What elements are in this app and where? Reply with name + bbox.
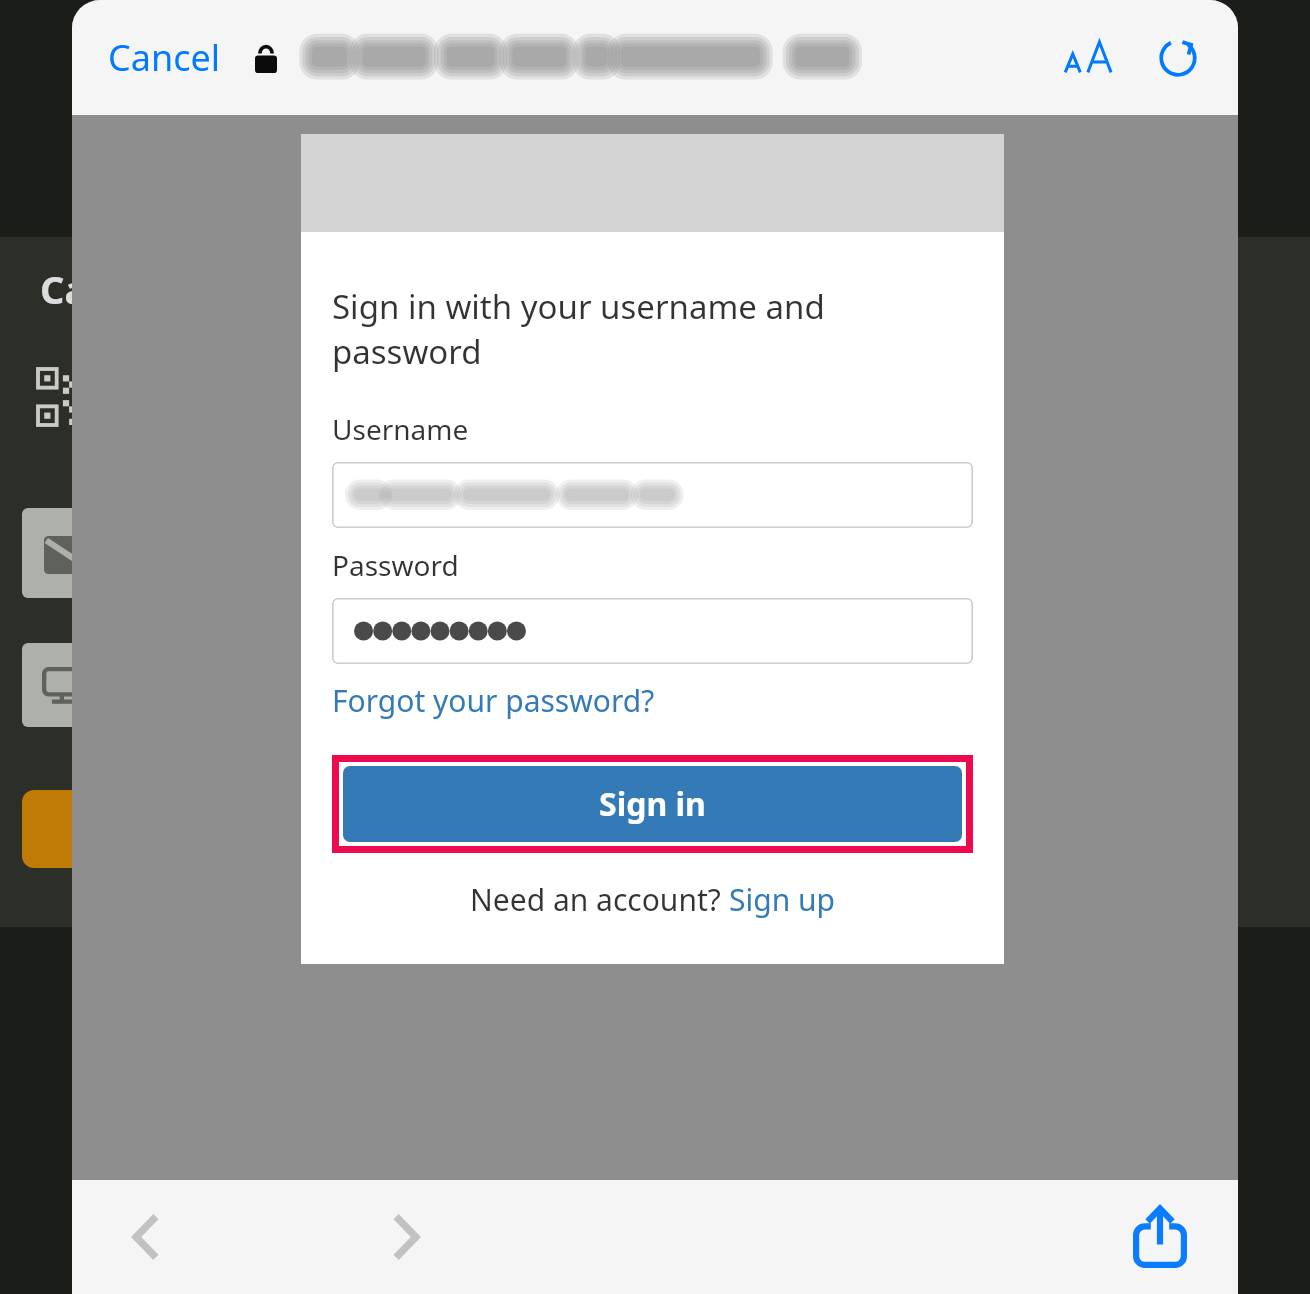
button[interactable]: Display xyxy=(22,643,118,727)
staticText: Sign in with your username and password xyxy=(332,284,973,374)
staticText: Cancel xyxy=(108,33,221,82)
button[interactable]: Mail xyxy=(22,508,118,598)
button[interactable]: Action xyxy=(22,790,118,868)
button[interactable]: Reload xyxy=(1146,26,1210,90)
button[interactable]: Back xyxy=(100,1191,192,1283)
button[interactable]: Forward xyxy=(360,1191,452,1283)
staticText: Need an account? xyxy=(470,879,729,920)
staticText: Password xyxy=(332,546,459,584)
button[interactable]: Sign in xyxy=(343,766,962,842)
staticText: Sign in xyxy=(599,782,706,826)
button[interactable]: Cancel xyxy=(100,23,229,92)
button[interactable]: Forgot your password? xyxy=(332,676,655,725)
button[interactable] xyxy=(332,598,973,664)
button[interactable]: Share xyxy=(1112,1189,1208,1285)
staticText: Username xyxy=(332,410,469,448)
button[interactable]: Text size xyxy=(1050,28,1128,88)
staticText: Sign up xyxy=(729,879,835,920)
button[interactable] xyxy=(332,462,973,528)
staticText: Ca xyxy=(40,263,88,315)
staticText: Forgot your password? xyxy=(332,680,655,721)
button[interactable]: Sign up xyxy=(729,879,835,920)
